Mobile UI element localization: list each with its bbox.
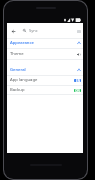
staticText: Theme [10, 51, 24, 57]
staticText: EN [76, 79, 80, 82]
button[interactable]: General [7, 65, 83, 75]
staticText: General [10, 67, 26, 73]
button[interactable]: App language [7, 75, 83, 85]
staticText: ON [75, 89, 80, 92]
button[interactable]: Backup [7, 85, 83, 95]
staticText: Backup [10, 87, 25, 93]
staticText: App language [10, 77, 38, 83]
button[interactable]: EN [74, 79, 81, 82]
button[interactable]: Theme [7, 48, 83, 60]
staticText: Appearance [10, 40, 34, 46]
button[interactable]: Back [9, 25, 18, 37]
staticText: Sync [29, 28, 38, 33]
button[interactable]: ON [74, 89, 81, 92]
button[interactable]: Appearance [7, 38, 83, 48]
button[interactable]: Voice search [75, 27, 83, 35]
button[interactable]: Sound [76, 52, 81, 57]
